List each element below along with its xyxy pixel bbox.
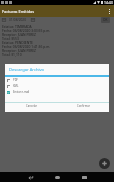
button[interactable]: PDF [5,77,109,83]
staticText: Estatus: TIMBRADA [2,24,32,28]
staticText: Fecha: 06/08/2020 1:41:36 p.m. [2,44,51,48]
staticText: Enviar e-mail [13,90,30,94]
staticText: Estatus: PENDIENTE [2,40,33,44]
staticText: Descargar Archivo [9,67,45,73]
staticText: Receptor: JUAN PEREZ [2,32,37,36]
staticText: XML [13,84,19,88]
button[interactable]: Home [51,172,63,182]
staticText: Fecha: 06/08/2020 3:03:55 p.m. [2,28,51,32]
button[interactable]: New invoice [99,158,110,169]
staticText: Receptor: JUAN PEREZ [2,48,37,52]
button[interactable]: XML [5,83,109,89]
button[interactable]: Cancelar [5,102,57,109]
staticText: 14:43 [104,0,113,5]
button[interactable]: Pick end date [30,17,36,23]
staticText: Total: $553 [2,36,19,40]
button[interactable]: Recent apps [78,172,90,182]
button[interactable]: Estatus: PENDIENTE [2,40,114,56]
button[interactable]: Enviar e-mail [5,89,109,95]
staticText: 01/08/2020 [9,18,26,22]
staticText: Facturas Emitidas [2,9,35,14]
staticText: PDF [13,78,18,82]
staticText: OK [103,18,108,22]
button[interactable]: Pick start date [1,17,7,23]
staticText: Confirmar [77,104,90,108]
button[interactable]: Estatus: TIMBRADA [2,24,114,40]
button[interactable]: Confirmar [57,102,109,109]
button[interactable]: OK [101,17,110,23]
button[interactable]: Back [24,172,36,182]
staticText: Total: $1,110 [2,52,22,56]
staticText: Cancelar [26,104,37,108]
button[interactable]: More options [105,5,114,17]
